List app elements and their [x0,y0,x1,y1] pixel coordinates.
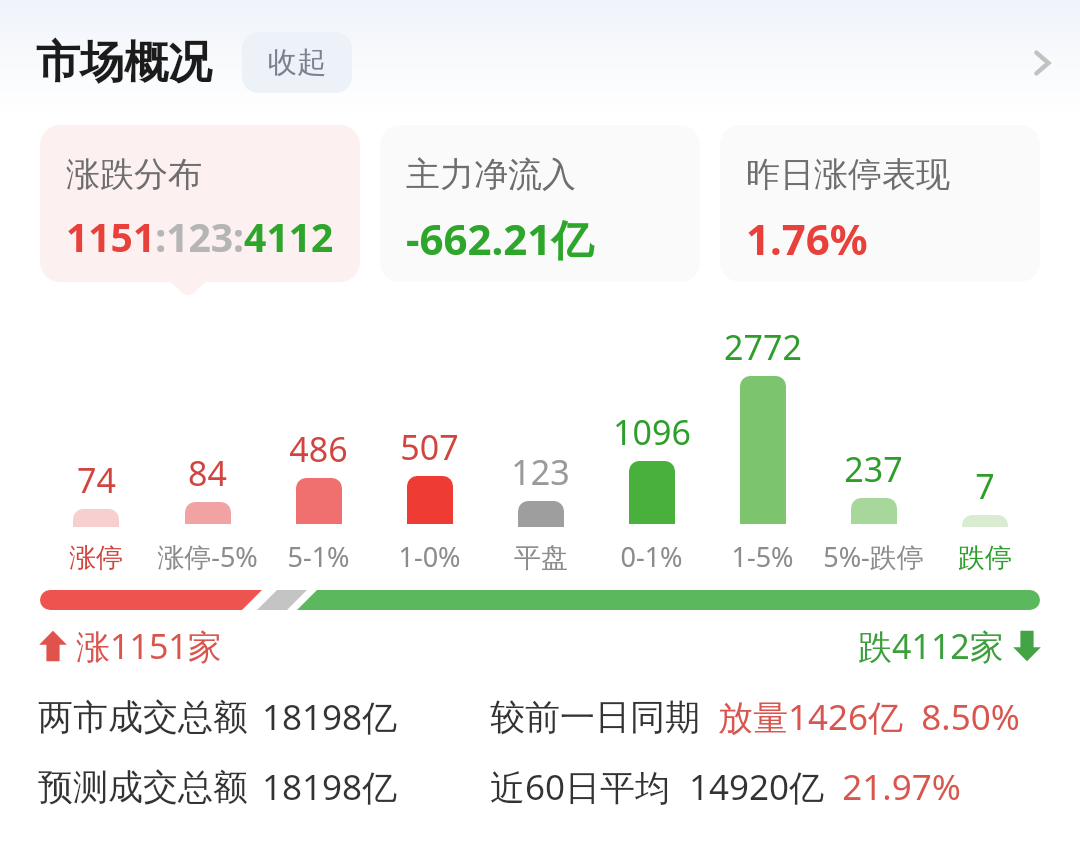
staticText: 涨停-5% [157,538,258,575]
staticText: 74 [77,457,116,503]
staticText: 涨1151家 [76,623,222,669]
staticText: 2772 [724,324,802,370]
staticText: 5%-跌停 [823,538,924,575]
staticText: 跌停 [958,541,1012,575]
staticText: 1.76% [746,210,868,267]
staticText: 近60日平均 [490,763,671,811]
staticText: 18198亿 [262,763,398,811]
staticText: 涨停 [69,541,123,575]
staticText: 1-0% [398,538,461,575]
staticText: 237 [844,446,903,492]
button[interactable]: More [1004,25,1080,101]
staticText: 7 [975,463,995,509]
staticText: 涨跌分布 [66,153,202,196]
staticText: 0-1% [620,538,683,575]
staticText: 两市成交总额 [38,695,248,739]
staticText: 放量1426亿 8.50% [718,693,1020,741]
staticText: 1151:123:4112 [66,210,334,263]
staticText: 市场概况 [36,35,212,90]
staticText: 平盘 [514,541,568,575]
staticText: 收起 [268,44,326,81]
staticText: 预测成交总额 [38,765,248,809]
staticText: 跌4112家 [858,623,1004,669]
staticText: 486 [289,426,348,472]
staticText: 84 [188,450,227,496]
staticText: 18198亿 [262,693,398,741]
staticText: 主力净流入 [406,153,576,196]
staticText: -662.21亿 [406,210,594,267]
staticText: 昨日涨停表现 [746,153,950,196]
staticText: 123 [511,449,570,495]
staticText: 507 [400,424,459,470]
staticText: 5-1% [287,538,350,575]
button[interactable]: 涨跌分布 [40,125,360,282]
button[interactable]: 主力净流入 [380,125,700,282]
button[interactable]: 收起 [242,32,352,93]
button[interactable]: 昨日涨停表现 [720,125,1040,282]
staticText: 较前一日同期 [490,695,700,739]
staticText: 1-5% [731,538,794,575]
staticText: 1096 [613,409,691,455]
staticText: 14920亿 21.97% [689,763,961,811]
